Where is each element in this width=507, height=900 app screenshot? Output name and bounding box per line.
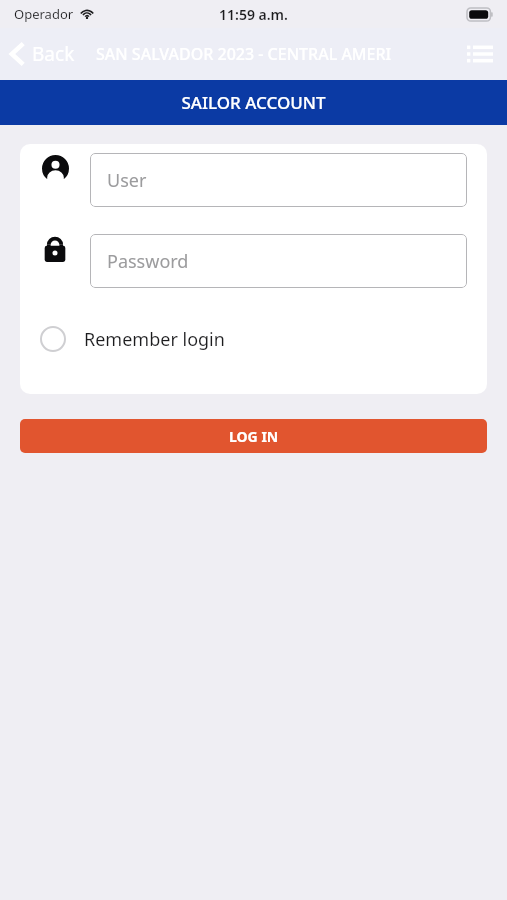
button[interactable]: Password [90, 234, 467, 288]
button[interactable]: Back [0, 35, 81, 73]
staticText: Operador [14, 5, 74, 23]
staticText: User [107, 168, 147, 193]
button[interactable]: Menu [453, 34, 507, 74]
staticText: LOG IN [229, 427, 279, 446]
staticText: SAILOR ACCOUNT [181, 91, 326, 114]
other: User [42, 155, 69, 182]
button[interactable]: LOG IN [20, 419, 487, 453]
staticText: SAN SALVADOR 2023 - CENTRAL AMERI [96, 43, 392, 65]
button[interactable]: User [90, 153, 467, 207]
other: Password [43, 235, 67, 262]
staticText: Password [107, 249, 189, 274]
staticText: Back [32, 41, 75, 67]
staticText: Remember login [84, 327, 225, 352]
staticText: 11:59 a.m. [219, 5, 288, 24]
other: Back [10, 41, 25, 67]
button[interactable]: Remember login [20, 322, 487, 356]
